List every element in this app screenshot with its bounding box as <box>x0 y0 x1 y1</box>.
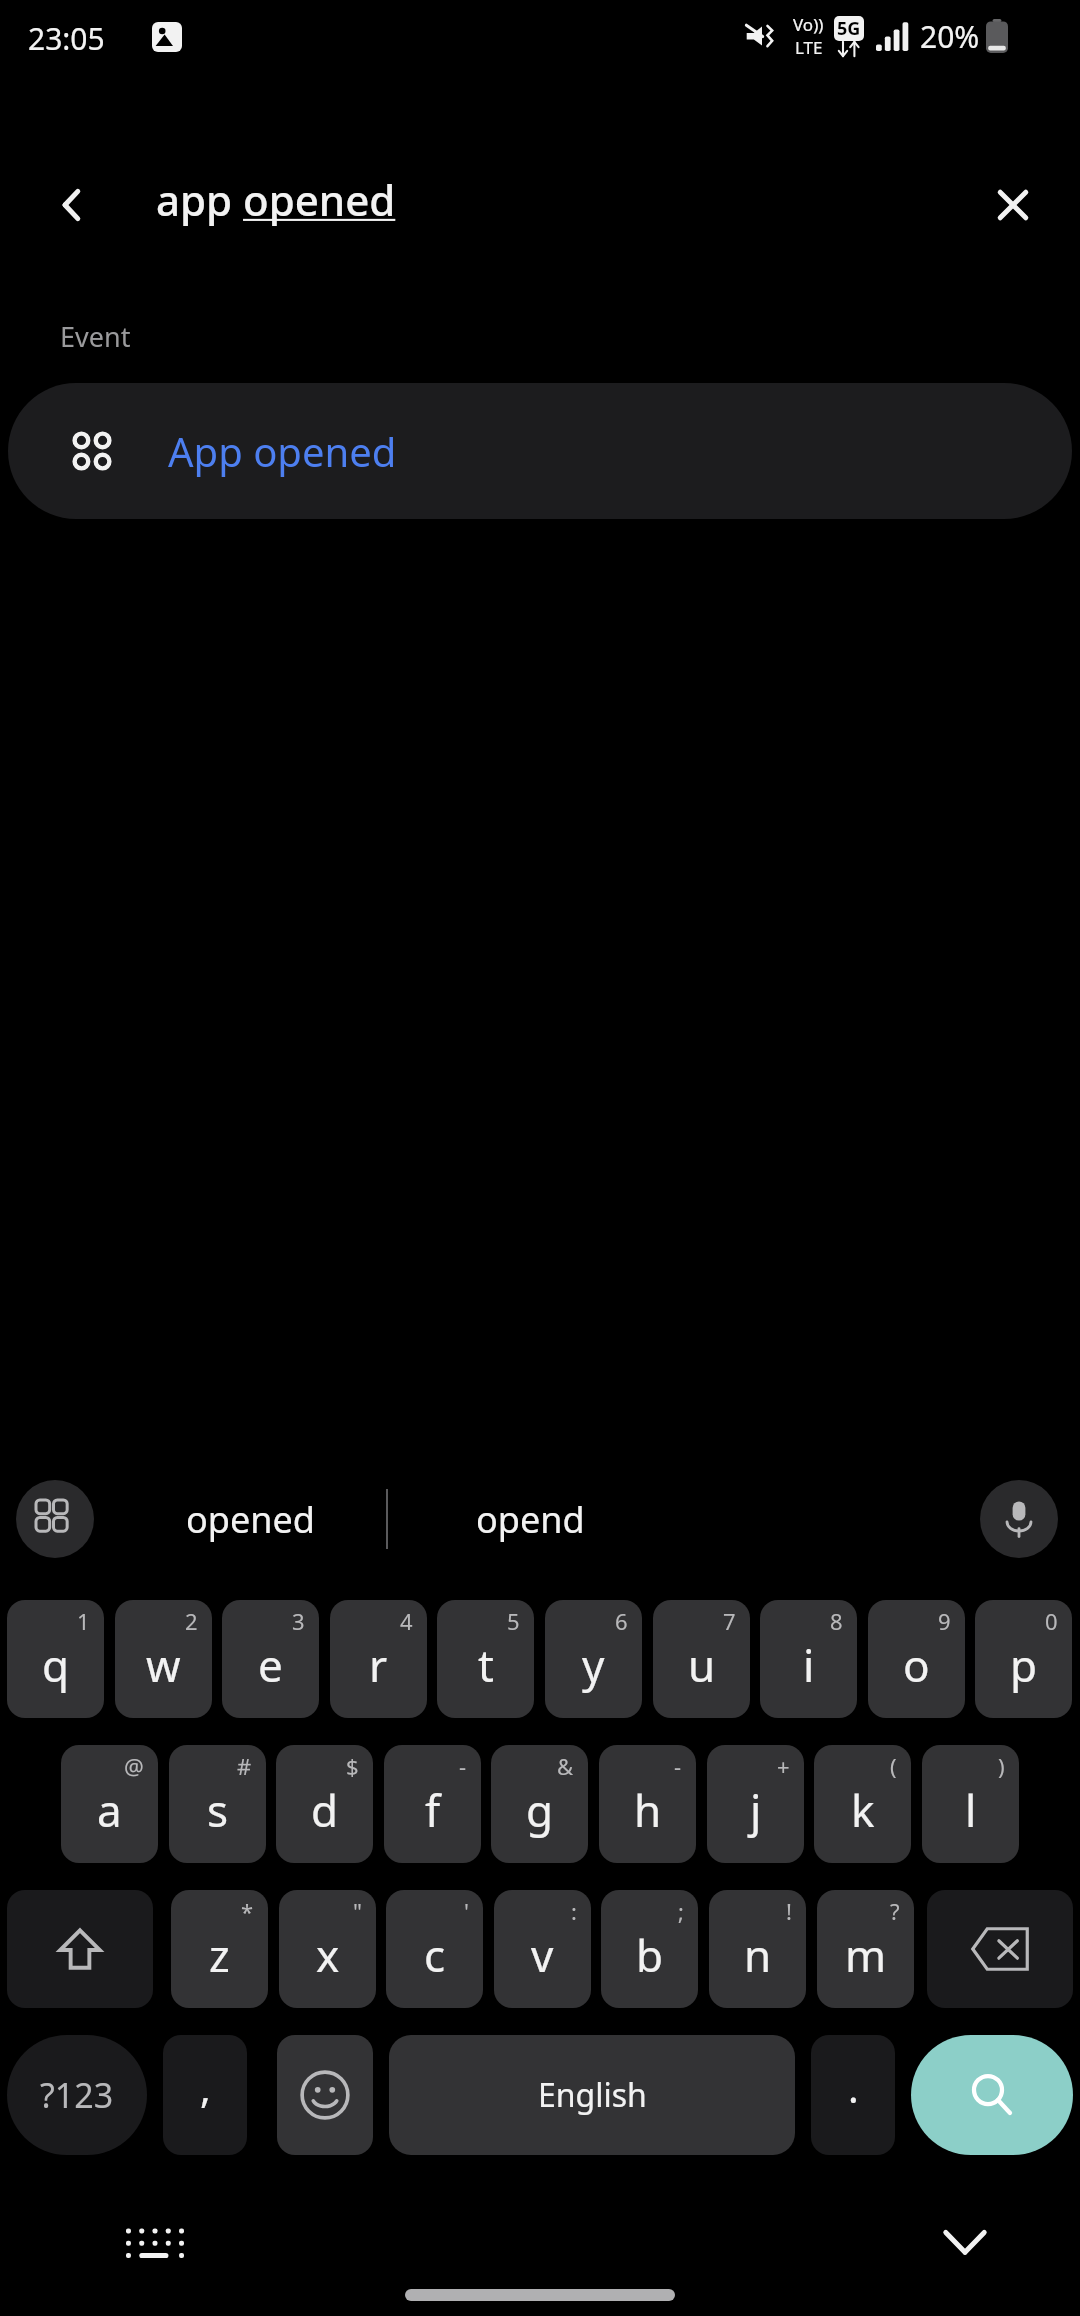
button[interactable]: Search <box>911 2035 1073 2155</box>
staticText: p <box>1010 1635 1038 1695</box>
staticText: i <box>803 1635 815 1695</box>
button[interactable]: a <box>61 1745 158 1863</box>
staticText: English <box>538 2073 647 2117</box>
staticText: . <box>848 2060 859 2114</box>
staticText: j <box>750 1780 762 1840</box>
staticText: g <box>526 1780 554 1840</box>
staticText: ( <box>890 1751 897 1781</box>
staticText: v <box>531 1925 554 1985</box>
button[interactable]: Emoji <box>277 2035 373 2155</box>
button[interactable]: ?123 <box>7 2035 147 2155</box>
staticText: 7 <box>723 1606 736 1636</box>
staticText: : <box>571 1896 577 1926</box>
staticText: 4 <box>400 1606 413 1636</box>
button[interactable]: opend <box>400 1464 660 1574</box>
staticText: @ <box>124 1751 144 1781</box>
staticText: " <box>353 1896 362 1926</box>
button[interactable]: y <box>545 1600 642 1718</box>
button[interactable]: l <box>922 1745 1019 1863</box>
staticText: n <box>744 1925 772 1985</box>
staticText: 5G <box>837 16 861 41</box>
staticText: , <box>200 2060 211 2114</box>
button[interactable]: p <box>975 1600 1072 1718</box>
staticText: LTE <box>795 36 823 59</box>
staticText: 8 <box>830 1606 843 1636</box>
staticText: 1 <box>77 1606 90 1636</box>
button[interactable]: opened <box>120 1464 380 1574</box>
staticText: ! <box>786 1896 792 1926</box>
button[interactable]: App opened <box>8 383 1072 519</box>
button[interactable]: b <box>601 1890 698 2008</box>
button[interactable]: v <box>494 1890 591 2008</box>
button[interactable]: Shift <box>7 1890 153 2008</box>
staticText: h <box>634 1780 662 1840</box>
button[interactable]: English <box>389 2035 795 2155</box>
button[interactable]: z <box>171 1890 268 2008</box>
button[interactable]: o <box>868 1600 965 1718</box>
button[interactable]: s <box>169 1745 266 1863</box>
button[interactable]: Backspace <box>927 1890 1073 2008</box>
staticText: 6 <box>615 1606 628 1636</box>
staticText: b <box>636 1925 664 1985</box>
button[interactable]: g <box>491 1745 588 1863</box>
button[interactable]: k <box>814 1745 911 1863</box>
staticText: * <box>241 1896 254 1926</box>
staticText: ) <box>998 1751 1005 1781</box>
button[interactable]: r <box>330 1600 427 1718</box>
staticText: k <box>851 1780 875 1840</box>
staticText: 2 <box>185 1606 198 1636</box>
staticText: $ <box>346 1751 359 1781</box>
button[interactable]: w <box>115 1600 212 1718</box>
staticText: & <box>557 1751 574 1781</box>
staticText: ? <box>890 1896 900 1926</box>
staticText: u <box>688 1635 716 1695</box>
staticText: f <box>425 1780 441 1840</box>
staticText: m <box>845 1925 887 1985</box>
staticText: Vo)) <box>793 13 824 36</box>
button[interactable]: m <box>817 1890 914 2008</box>
staticText: l <box>965 1780 977 1840</box>
staticText: d <box>311 1780 339 1840</box>
button[interactable]: c <box>386 1890 483 2008</box>
staticText: 5 <box>507 1606 520 1636</box>
staticText: - <box>674 1751 682 1781</box>
button[interactable]: j <box>707 1745 804 1863</box>
button[interactable]: Change keyboard <box>110 2207 200 2277</box>
button[interactable]: q <box>7 1600 104 1718</box>
button[interactable]: Hide keyboard <box>920 2207 1010 2277</box>
staticText: e <box>258 1635 283 1695</box>
staticText: 0 <box>1045 1606 1058 1636</box>
staticText: 9 <box>938 1606 951 1636</box>
button[interactable]: h <box>599 1745 696 1863</box>
staticText: App opened <box>168 424 397 478</box>
staticText: opend <box>476 1495 585 1544</box>
staticText: 3 <box>292 1606 305 1636</box>
staticText: x <box>316 1925 340 1985</box>
button[interactable]: i <box>760 1600 857 1718</box>
button[interactable]: t <box>437 1600 534 1718</box>
button[interactable]: d <box>276 1745 373 1863</box>
staticText: r <box>369 1635 388 1695</box>
button[interactable]: Keyboard modes <box>16 1480 94 1558</box>
button[interactable]: n <box>709 1890 806 2008</box>
button[interactable]: e <box>222 1600 319 1718</box>
button[interactable]: , <box>163 2035 247 2155</box>
staticText: ; <box>678 1896 684 1926</box>
staticText: app opened <box>156 171 396 228</box>
staticText: s <box>207 1780 229 1840</box>
staticText: w <box>146 1635 181 1695</box>
button[interactable]: Back <box>28 160 118 250</box>
staticText: 20% <box>920 16 980 57</box>
staticText: o <box>903 1635 930 1695</box>
staticText: y <box>582 1635 605 1695</box>
button[interactable]: x <box>279 1890 376 2008</box>
button[interactable]: u <box>653 1600 750 1718</box>
staticText: 23:05 <box>28 18 105 59</box>
button[interactable]: . <box>811 2035 895 2155</box>
staticText: - <box>459 1751 467 1781</box>
button[interactable]: Voice input <box>980 1480 1058 1558</box>
staticText: z <box>209 1925 230 1985</box>
button[interactable]: Clear search <box>968 160 1058 250</box>
button[interactable]: f <box>384 1745 481 1863</box>
staticText: t <box>478 1635 494 1695</box>
